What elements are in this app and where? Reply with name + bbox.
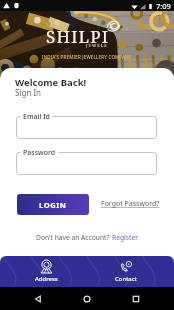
staticText: 7:09 [156,1,171,11]
button[interactable]: Forgot Password? [101,199,160,209]
other: Warning [3,2,10,9]
staticText: Password [23,148,56,158]
staticText: Register [112,233,138,242]
staticText: SHILPI [46,25,110,48]
staticText: Welcome Back! [15,76,87,89]
staticText: Sign In [15,87,42,98]
button[interactable] [16,116,157,139]
button[interactable]: Address [24,258,68,285]
button[interactable]: Contact [104,258,148,285]
staticText: Contact [115,275,137,283]
staticText: J E W E L S [86,43,107,48]
button[interactable]: Register [112,233,138,242]
staticText: Address [35,275,58,283]
staticText: Don't have an Account? [36,233,112,242]
button[interactable]: Home [76,288,98,310]
button[interactable]: Back [27,288,49,310]
staticText: Email Id [23,112,50,122]
button[interactable]: LOGIN [17,194,89,215]
staticText: INDIA'S PREMIER JEWELLERY COMPANY [42,54,132,60]
staticText: LOGIN [39,200,67,210]
staticText: Forgot Password? [101,199,160,209]
button[interactable] [16,152,157,175]
button[interactable]: Recent apps [125,288,147,310]
